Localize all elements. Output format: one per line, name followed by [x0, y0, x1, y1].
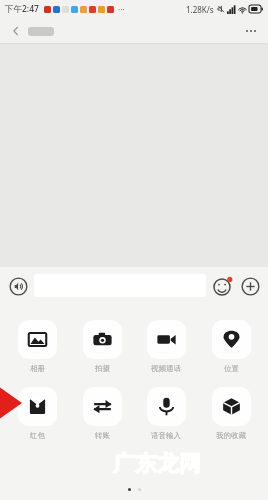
- staticText: 拍摄: [95, 364, 110, 373]
- button[interactable]: Voice message: [6, 274, 30, 298]
- staticText: ···: [118, 4, 125, 15]
- staticText: 视频通话: [151, 364, 181, 373]
- button[interactable]: Voice input: [137, 387, 195, 440]
- staticText: 我的收藏: [216, 431, 246, 440]
- staticText: 1.28K/s: [186, 4, 214, 15]
- button[interactable]: Location: [202, 320, 260, 373]
- staticText: 相册: [30, 364, 45, 373]
- button[interactable]: My favorites: [202, 387, 260, 440]
- staticText: 转账: [95, 431, 110, 440]
- button[interactable]: More options: [240, 21, 262, 41]
- staticText: 红包: [30, 431, 45, 440]
- button[interactable]: Camera: [73, 320, 131, 373]
- staticText: 位置: [224, 364, 239, 373]
- button[interactable]: Emoji: [211, 274, 235, 298]
- button[interactable]: Photo album: [8, 320, 66, 373]
- button[interactable]: Video call: [137, 320, 195, 373]
- button[interactable]: Transfer: [73, 387, 131, 440]
- staticText: 下午2:47: [5, 3, 39, 15]
- staticText: 广东龙网: [113, 450, 201, 478]
- button[interactable]: More functions: [238, 274, 262, 298]
- button[interactable]: Red packet: [8, 387, 66, 440]
- staticText: 语音输入: [151, 431, 181, 440]
- button[interactable]: Back: [6, 21, 26, 41]
